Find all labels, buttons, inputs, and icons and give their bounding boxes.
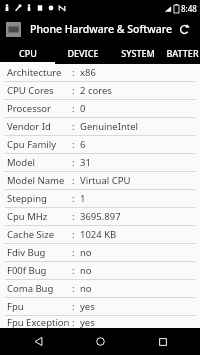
staticText: DEVICE xyxy=(67,47,99,59)
button[interactable]: CPU Cores xyxy=(0,82,200,99)
staticText: CPU xyxy=(19,47,37,59)
staticText: 2 cores xyxy=(80,84,112,97)
button[interactable]: Fpu xyxy=(0,298,200,315)
staticText: Virtual CPU xyxy=(80,174,131,187)
staticText: : xyxy=(72,210,80,223)
staticText: Architecture xyxy=(7,66,72,79)
button[interactable]: F00f Bug xyxy=(0,262,200,279)
staticText: no xyxy=(80,282,92,295)
staticText: yes xyxy=(80,316,95,328)
button[interactable]: Recent apps xyxy=(138,328,188,355)
staticText: : xyxy=(72,102,80,115)
staticText: Phone Hardware & Software xyxy=(30,22,174,36)
staticText: x86 xyxy=(80,66,96,79)
button[interactable]: Architecture xyxy=(0,64,200,81)
staticText: Processor xyxy=(7,102,72,115)
staticText: SYSTEM xyxy=(121,47,155,59)
staticText: Fpu xyxy=(7,300,72,313)
button[interactable]: Cache Size xyxy=(0,226,200,243)
button[interactable]: Fdiv Bug xyxy=(0,244,200,261)
staticText: : xyxy=(72,192,80,205)
staticText: : xyxy=(72,156,80,169)
staticText: : xyxy=(72,228,80,241)
button[interactable]: BATTERY xyxy=(165,42,200,64)
button[interactable]: Refresh xyxy=(174,19,194,39)
button[interactable]: CPU xyxy=(0,42,55,64)
staticText: : xyxy=(72,120,80,133)
staticText: 3695.897 xyxy=(80,210,121,223)
staticText: : xyxy=(72,174,80,187)
button[interactable]: SYSTEM xyxy=(110,42,165,64)
staticText: Cpu MHz xyxy=(7,210,72,223)
button[interactable]: Coma Bug xyxy=(0,280,200,297)
staticText: F00f Bug xyxy=(7,264,72,277)
staticText: 6 xyxy=(80,138,86,151)
staticText: BATTERY xyxy=(165,47,200,59)
staticText: GenuineIntel xyxy=(80,120,139,133)
button[interactable]: Stepping xyxy=(0,190,200,207)
staticText: : xyxy=(72,66,80,79)
staticText: : xyxy=(72,316,80,328)
button[interactable]: Processor xyxy=(0,100,200,117)
staticText: 1024 KB xyxy=(80,228,117,241)
button[interactable]: Home xyxy=(75,328,125,355)
button[interactable]: Model xyxy=(0,154,200,171)
staticText: : xyxy=(72,282,80,295)
staticText: Model Name xyxy=(7,174,72,187)
staticText: : xyxy=(72,264,80,277)
staticText: 31 xyxy=(80,156,91,169)
staticText: Stepping xyxy=(7,192,72,205)
staticText: Coma Bug xyxy=(7,282,72,295)
staticText: no xyxy=(80,264,92,277)
staticText: Fdiv Bug xyxy=(7,246,72,259)
staticText: Cache Size xyxy=(7,228,72,241)
staticText: Vendor Id xyxy=(7,120,72,133)
button[interactable]: Model Name xyxy=(0,172,200,189)
staticText: CPU Cores xyxy=(7,84,72,97)
staticText: Cpu Family xyxy=(7,138,72,151)
staticText: 8:48 xyxy=(181,3,197,14)
staticText: : xyxy=(72,246,80,259)
staticText: Model xyxy=(7,156,72,169)
staticText: yes xyxy=(80,300,95,313)
staticText: : xyxy=(72,84,80,97)
staticText: no xyxy=(80,246,92,259)
button[interactable]: Vendor Id xyxy=(0,118,200,135)
staticText: 0 xyxy=(80,102,86,115)
staticText: 1 xyxy=(80,192,86,205)
button[interactable]: Fpu Exception xyxy=(0,316,200,328)
staticText: : xyxy=(72,138,80,151)
button[interactable]: DEVICE xyxy=(55,42,110,64)
button[interactable]: Cpu MHz xyxy=(0,208,200,225)
button[interactable]: Back xyxy=(13,328,63,355)
staticText: Fpu Exception xyxy=(7,316,72,328)
staticText: : xyxy=(72,300,80,313)
button[interactable]: Cpu Family xyxy=(0,136,200,153)
